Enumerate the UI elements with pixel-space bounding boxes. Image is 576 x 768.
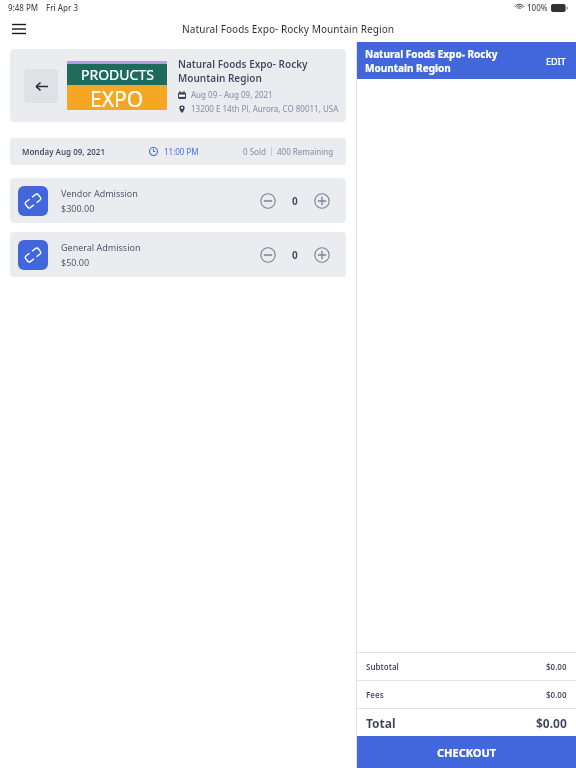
staticText: Subtotal bbox=[366, 661, 399, 672]
staticText: Aug 09 - Aug 09, 2021 bbox=[191, 89, 273, 100]
staticText: PRODUCTS bbox=[81, 65, 154, 84]
staticText: Fri Apr 3 bbox=[46, 2, 79, 13]
button[interactable]: CHECKOUT bbox=[357, 736, 576, 768]
staticText: $0.00 bbox=[536, 715, 567, 731]
staticText: 400 Remaining bbox=[277, 146, 334, 157]
button[interactable]: Increase quantity bbox=[312, 191, 332, 211]
staticText: $0.00 bbox=[546, 689, 567, 700]
staticText: Fees bbox=[366, 689, 384, 700]
staticText: $0.00 bbox=[546, 661, 567, 672]
staticText: 9:48 PM bbox=[8, 2, 39, 13]
button[interactable]: General Admission bbox=[10, 232, 346, 277]
staticText: 100% bbox=[527, 2, 548, 13]
staticText: Vendor Admission bbox=[61, 187, 138, 199]
staticText: $300.00 bbox=[61, 202, 95, 214]
staticText: Total bbox=[366, 715, 396, 731]
staticText: 0 bbox=[292, 194, 298, 208]
button[interactable]: Increase quantity bbox=[312, 245, 332, 265]
staticText: EDIT bbox=[546, 55, 566, 67]
staticText: Natural Foods Expo- Rocky Mountain Regio… bbox=[182, 22, 395, 36]
staticText: $50.00 bbox=[61, 256, 90, 268]
staticText: 11:00 PM bbox=[164, 146, 199, 157]
button[interactable]: Decrease quantity bbox=[258, 245, 278, 265]
button[interactable]: EDIT bbox=[542, 51, 570, 71]
staticText: 0 Sold bbox=[243, 146, 266, 157]
staticText: Natural Foods Expo- Rocky Mountain Regio… bbox=[178, 57, 308, 85]
button[interactable]: Back bbox=[10, 49, 346, 122]
staticText: EXPO bbox=[90, 85, 144, 110]
staticText: CHECKOUT bbox=[437, 745, 497, 760]
button[interactable]: Vendor Admission bbox=[10, 178, 346, 223]
button[interactable]: Menu bbox=[4, 15, 34, 42]
staticText: Monday Aug 09, 2021 bbox=[22, 146, 105, 157]
button[interactable]: Back bbox=[24, 69, 58, 103]
staticText: General Admission bbox=[61, 241, 141, 253]
staticText: 13200 E 14th Pl, Aurora, CO 80011, USA bbox=[191, 103, 339, 114]
button[interactable]: Decrease quantity bbox=[258, 191, 278, 211]
button[interactable]: Monday Aug 09, 2021 bbox=[10, 138, 346, 165]
staticText: 0 bbox=[292, 248, 298, 262]
staticText: Natural Foods Expo- Rocky Mountain Regio… bbox=[365, 47, 542, 75]
